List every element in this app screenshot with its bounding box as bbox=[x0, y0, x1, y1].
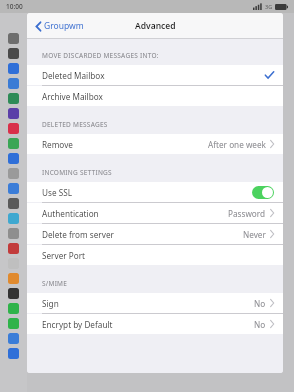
button[interactable]: Archive Mailbox bbox=[27, 86, 283, 106]
button[interactable]: Sign bbox=[27, 293, 283, 313]
staticText: Never bbox=[243, 229, 266, 240]
button[interactable]: Remove bbox=[27, 134, 283, 154]
staticText: Remove bbox=[42, 139, 73, 150]
button[interactable]: Authentication bbox=[27, 203, 283, 223]
button[interactable]: Deleted Mailbox bbox=[27, 65, 283, 85]
staticText: Deleted Mailbox bbox=[42, 70, 105, 81]
staticText: DELETED MESSAGES bbox=[42, 120, 108, 129]
staticText: Groupwm bbox=[44, 20, 84, 32]
button[interactable]: Groupwm bbox=[36, 17, 90, 35]
staticText: INCOMING SETTINGS bbox=[42, 168, 112, 177]
staticText: 3G bbox=[265, 3, 273, 10]
button[interactable]: Delete from server bbox=[27, 224, 283, 244]
staticText: Authentication bbox=[42, 208, 99, 219]
staticText: Archive Mailbox bbox=[42, 91, 103, 102]
button[interactable]: Server Port bbox=[27, 245, 283, 265]
staticText: No bbox=[254, 298, 266, 309]
staticText: Sign bbox=[42, 298, 59, 309]
button[interactable]: Use SSL bbox=[27, 182, 283, 202]
button[interactable]: Use SSL bbox=[252, 186, 274, 199]
staticText: 10:00 bbox=[6, 2, 23, 11]
staticText: Use SSL bbox=[42, 187, 72, 198]
staticText: Password bbox=[228, 208, 266, 219]
staticText: Delete from server bbox=[42, 229, 114, 240]
staticText: No bbox=[254, 319, 266, 330]
staticText: MOVE DISCARDED MESSAGES INTO: bbox=[42, 51, 159, 60]
staticText: S/MIME bbox=[42, 279, 68, 288]
staticText: After one week bbox=[208, 139, 266, 150]
staticText: Advanced bbox=[135, 20, 176, 32]
staticText: Server Port bbox=[42, 250, 86, 261]
button[interactable]: Encrypt by Default bbox=[27, 314, 283, 334]
staticText: Encrypt by Default bbox=[42, 319, 113, 330]
